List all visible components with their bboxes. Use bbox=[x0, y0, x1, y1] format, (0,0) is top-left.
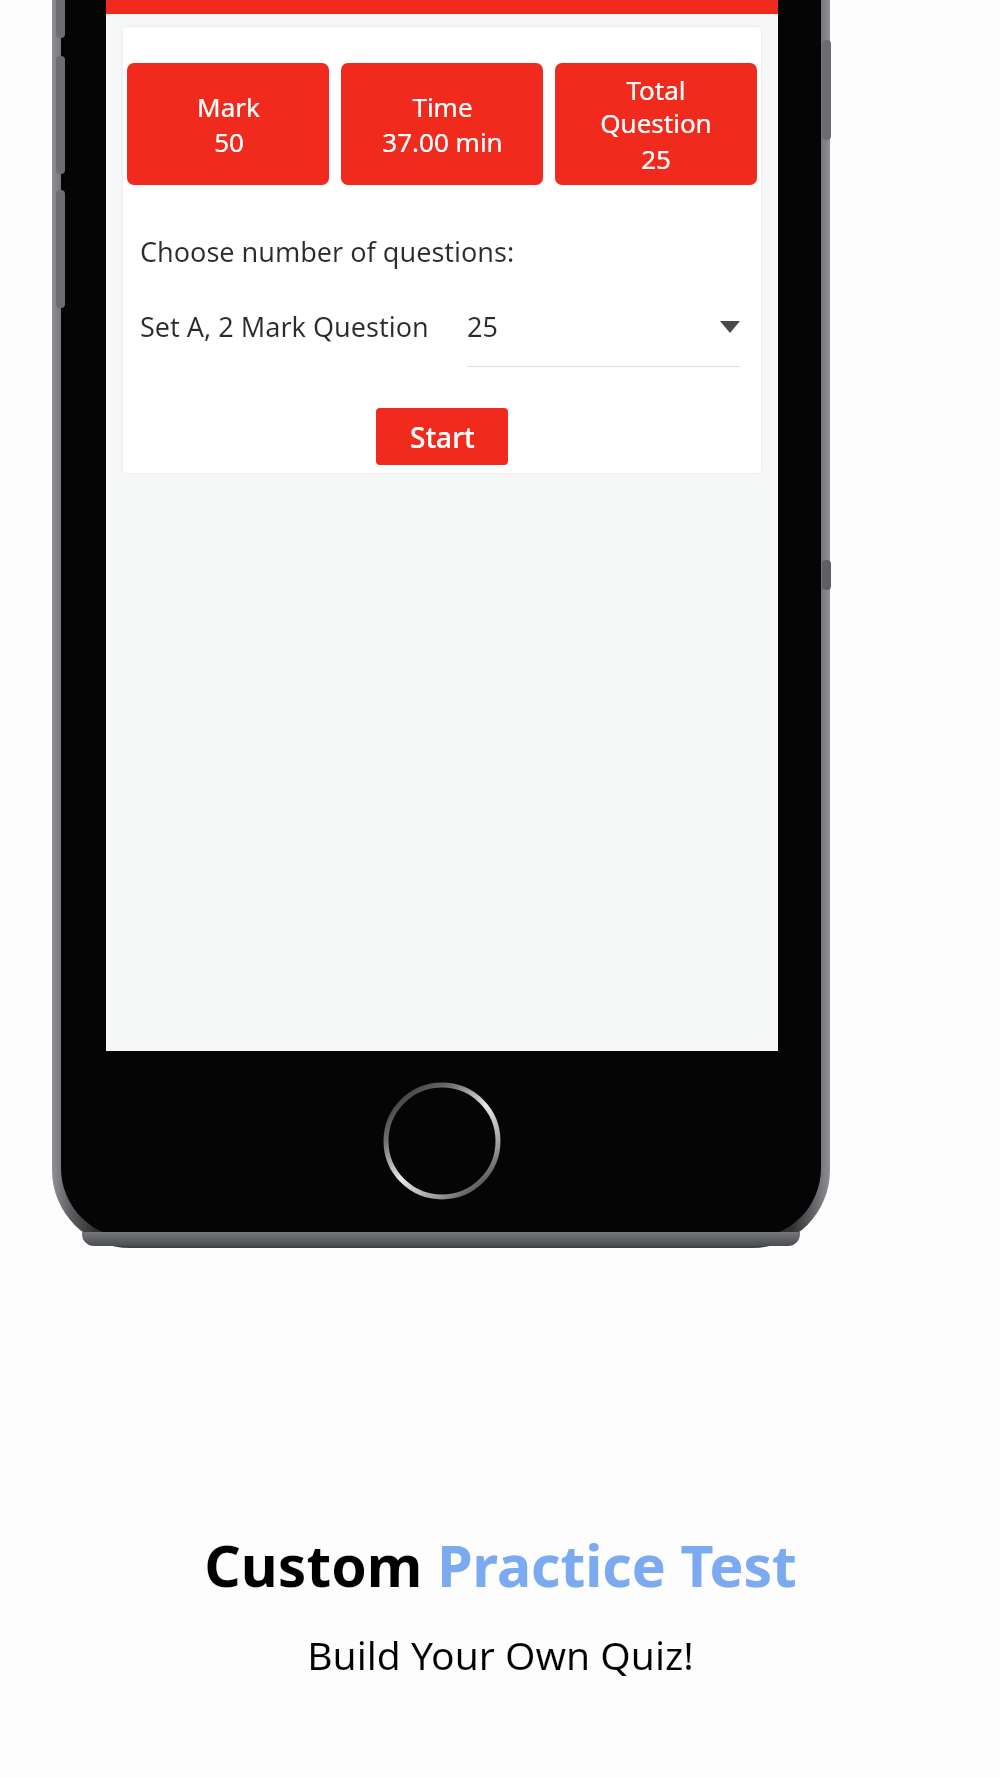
staticText: Total Question bbox=[600, 72, 712, 141]
button[interactable]: 25 bbox=[467, 308, 740, 345]
button[interactable]: Total Question bbox=[555, 63, 757, 185]
staticText: Build Your Own Quiz! bbox=[307, 1628, 694, 1681]
staticText: Time bbox=[412, 89, 473, 124]
staticText: Set A, 2 Mark Question bbox=[140, 308, 429, 345]
button[interactable]: Mark bbox=[127, 63, 329, 185]
staticText: 37.00 min bbox=[382, 124, 503, 159]
staticText: Start bbox=[410, 418, 475, 456]
staticText: 25 bbox=[467, 308, 498, 345]
staticText: Choose number of questions: bbox=[140, 233, 515, 270]
button[interactable]: Time bbox=[341, 63, 543, 185]
other: Open dropdown bbox=[720, 321, 740, 333]
staticText: Mark bbox=[197, 89, 260, 124]
staticText: 50 bbox=[214, 124, 244, 159]
button[interactable]: Start bbox=[376, 408, 508, 465]
staticText: 25 bbox=[641, 141, 671, 176]
staticText: Custom Practice Test bbox=[204, 1526, 797, 1604]
